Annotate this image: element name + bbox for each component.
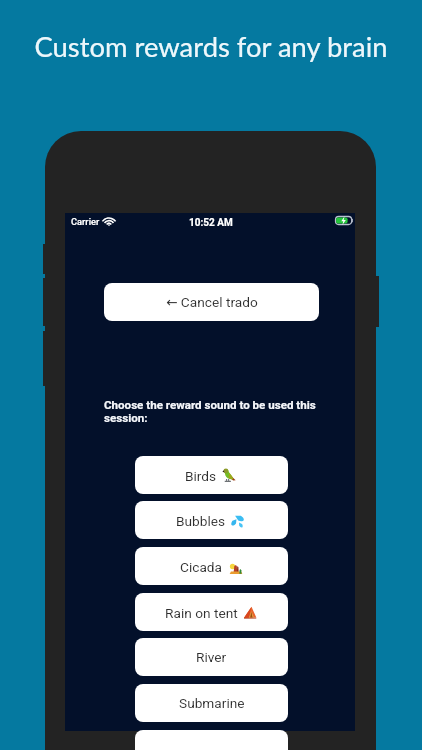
- staticText: Cicada: [180, 559, 223, 575]
- button[interactable]: Bubbles: [135, 501, 288, 539]
- button[interactable]: Birds: [135, 456, 288, 494]
- staticText: Carrier: [71, 216, 100, 227]
- staticText: Bubbles: [176, 513, 226, 529]
- button[interactable]: Rain on tent: [135, 593, 288, 631]
- button[interactable]: Cicada: [135, 547, 288, 585]
- staticText: Custom rewards for any brain: [0, 30, 422, 63]
- button[interactable]: River: [135, 638, 288, 676]
- other: Wi-Fi: [103, 217, 115, 226]
- button[interactable]: [135, 730, 288, 750]
- staticText: River: [196, 649, 227, 665]
- staticText: ← Cancel trado: [166, 294, 258, 310]
- staticText: Birds: [185, 468, 217, 484]
- button[interactable]: ← Cancel trado: [104, 283, 319, 321]
- button[interactable]: Submarine: [135, 684, 288, 722]
- staticText: Choose the reward sound to be used this …: [104, 398, 318, 425]
- other: Battery charging: [335, 216, 353, 225]
- staticText: 10:52 AM: [189, 217, 233, 229]
- staticText: Submarine: [179, 695, 245, 711]
- staticText: Rain on tent: [165, 605, 238, 621]
